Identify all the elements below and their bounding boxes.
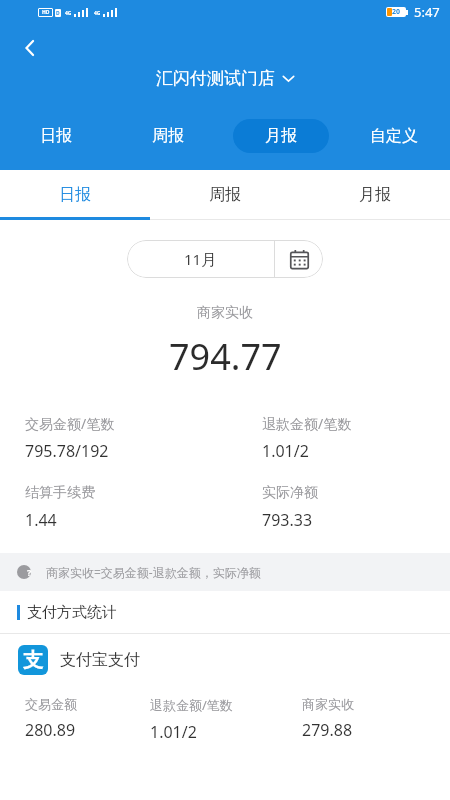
button[interactable]: 周报 — [120, 119, 216, 153]
staticText: 实际净额 — [262, 484, 318, 502]
button[interactable]: 自定义 — [346, 119, 442, 153]
button[interactable]: 月报 — [233, 119, 329, 153]
staticText: 退款金额/笔数 — [262, 414, 352, 433]
staticText: 795.78/192 — [25, 440, 109, 462]
staticText: 月报 — [265, 126, 297, 146]
staticText: 交易金额 — [25, 696, 77, 712]
button[interactable]: 月报 — [300, 170, 450, 220]
staticText: 1.44 — [25, 509, 57, 531]
staticText: 结算手续费 — [25, 484, 95, 502]
staticText: 日报 — [40, 126, 72, 146]
staticText: 4G — [94, 10, 101, 17]
staticText: 周报 — [152, 126, 184, 146]
staticText: 11月 — [184, 249, 217, 269]
staticText: 商家实收=交易金额-退款金额，实际净额 — [46, 564, 261, 580]
staticText: 1.01/2 — [262, 440, 309, 462]
staticText: 20 — [392, 7, 401, 17]
staticText: 自定义 — [370, 126, 418, 146]
button[interactable]: 汇闪付测试门店 — [150, 66, 301, 91]
staticText: HD — [42, 9, 50, 16]
staticText: 支 — [23, 648, 43, 673]
staticText: 商家实收 — [302, 696, 354, 712]
staticText: 794.77 — [169, 332, 282, 381]
button[interactable]: Back — [6, 24, 54, 72]
staticText: 5:47 — [414, 3, 440, 21]
staticText: 商家实收 — [197, 304, 253, 322]
staticText: 793.33 — [262, 509, 313, 531]
staticText: 279.88 — [302, 719, 353, 741]
button[interactable]: 11月 — [127, 240, 323, 278]
staticText: 支付宝支付 — [60, 650, 140, 670]
staticText: D — [56, 10, 60, 17]
staticText: 支付方式统计 — [27, 603, 117, 622]
staticText: 日报 — [59, 185, 91, 205]
staticText: 汇闪付测试门店 — [156, 68, 275, 89]
button[interactable]: 日报 — [0, 170, 150, 220]
button[interactable]: 日报 — [8, 119, 104, 153]
staticText: 月报 — [359, 185, 391, 205]
staticText: 280.89 — [25, 719, 76, 741]
staticText: 退款金额/笔数 — [150, 696, 233, 714]
staticText: 1.01/2 — [150, 721, 197, 743]
staticText: 4G — [65, 10, 72, 17]
staticText: 周报 — [209, 185, 241, 205]
staticText: ? — [27, 566, 32, 578]
button[interactable]: 周报 — [150, 170, 300, 220]
staticText: 交易金额/笔数 — [25, 414, 115, 433]
